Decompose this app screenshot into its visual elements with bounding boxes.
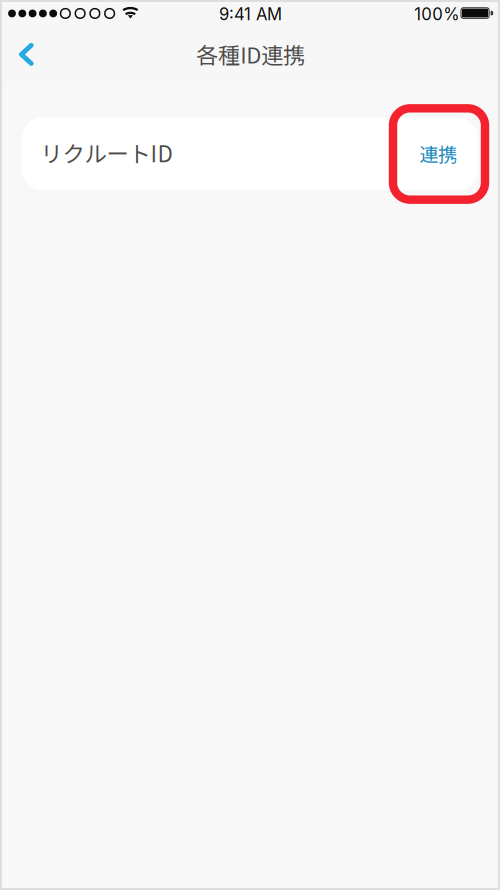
staticText: リクルートID <box>41 136 173 169</box>
button[interactable]: Back <box>3 31 49 77</box>
staticText: 100% <box>414 4 459 24</box>
button[interactable]: 連携 <box>392 117 484 189</box>
staticText: 連携 <box>419 139 457 167</box>
staticText: 各種ID連携 <box>196 38 305 70</box>
staticText: 9:41 AM <box>219 4 282 24</box>
